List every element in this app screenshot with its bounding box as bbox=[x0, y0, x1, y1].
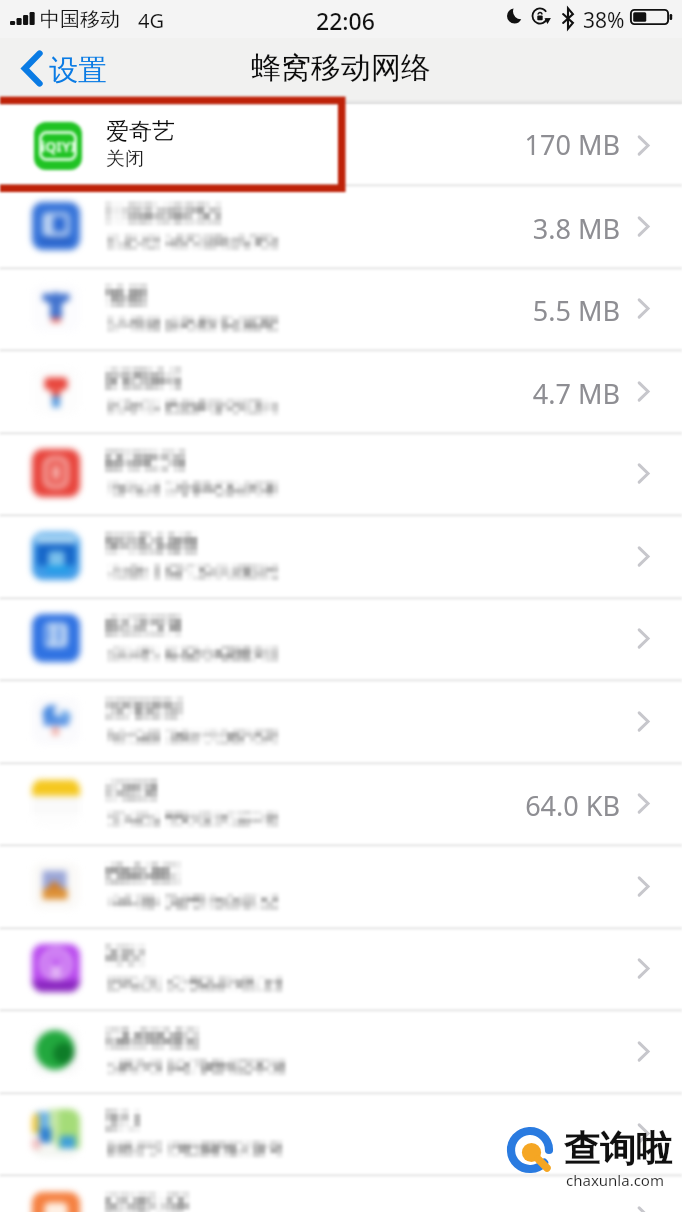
button[interactable]: Open bbox=[0, 681, 682, 764]
button[interactable]: iQIYI bbox=[0, 104, 682, 186]
other: Open bbox=[637, 135, 649, 156]
button[interactable]: 设置 bbox=[14, 38, 114, 104]
staticText: 设置 bbox=[49, 52, 107, 89]
staticText: 爱奇艺 bbox=[106, 117, 175, 146]
other: Open bbox=[637, 1123, 649, 1144]
button[interactable]: Open bbox=[0, 598, 682, 681]
button[interactable]: Open bbox=[0, 1093, 682, 1176]
staticText: 64.0 KB bbox=[380, 787, 620, 824]
other: Open bbox=[637, 463, 649, 484]
other: Open bbox=[637, 216, 649, 237]
other: Open bbox=[637, 1041, 649, 1062]
button[interactable]: Open bbox=[0, 846, 682, 929]
other: Open bbox=[637, 711, 649, 732]
button[interactable]: 5.5 MB bbox=[0, 268, 682, 351]
staticText: 38% bbox=[583, 6, 625, 35]
button[interactable]: Open bbox=[0, 1011, 682, 1094]
other: Open bbox=[637, 958, 649, 979]
staticText: 查询啦 bbox=[564, 1126, 672, 1171]
other: Open bbox=[637, 1206, 649, 1212]
other: Open bbox=[637, 546, 649, 567]
other: Open bbox=[637, 381, 649, 402]
other: Open bbox=[637, 628, 649, 649]
button[interactable]: 64.0 KB bbox=[0, 763, 682, 846]
staticText: 蜂窝移动网络 bbox=[251, 49, 431, 87]
button[interactable]: 3.8 MB bbox=[0, 186, 682, 269]
staticText: 170 MB bbox=[380, 126, 620, 163]
other: Open bbox=[637, 298, 649, 319]
other: Open bbox=[637, 793, 649, 814]
staticText: 关闭 bbox=[106, 147, 144, 171]
other: Open bbox=[637, 876, 649, 897]
button[interactable]: Open bbox=[0, 433, 682, 516]
staticText: 4.7 MB bbox=[380, 375, 620, 412]
staticText: 5.5 MB bbox=[380, 292, 620, 329]
button[interactable]: Open bbox=[0, 928, 682, 1011]
staticText: 4G bbox=[138, 7, 164, 34]
staticText: 中国移动 bbox=[40, 7, 120, 32]
button[interactable]: Open bbox=[0, 516, 682, 599]
staticText: 3.8 MB bbox=[380, 210, 620, 247]
staticText: chaxunla.com bbox=[566, 1170, 664, 1190]
button[interactable]: 4.7 MB bbox=[0, 351, 682, 434]
staticText: iQIYI bbox=[41, 137, 76, 156]
staticText: 22:06 bbox=[316, 5, 375, 36]
button[interactable]: Open bbox=[0, 1176, 682, 1212]
